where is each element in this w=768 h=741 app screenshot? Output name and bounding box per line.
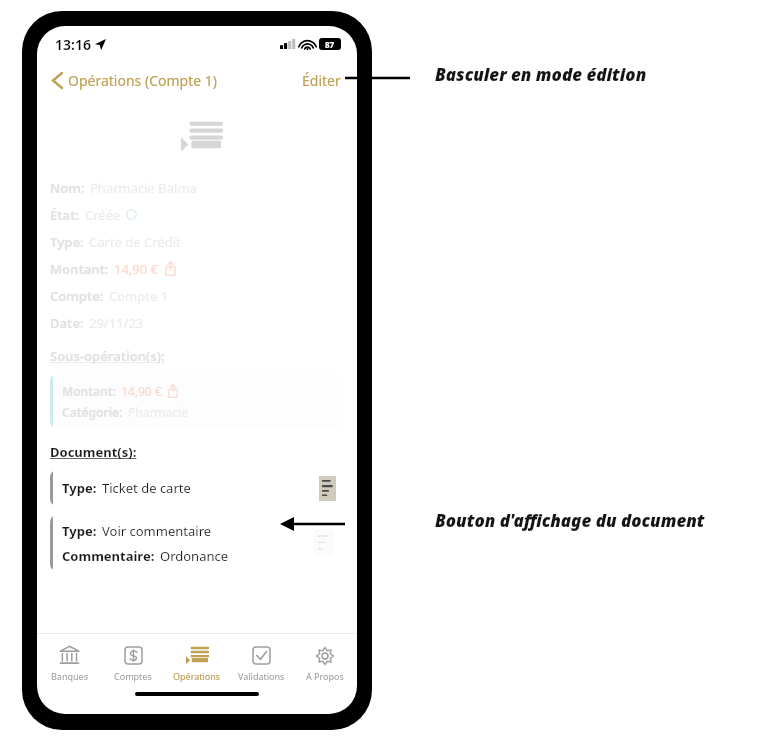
staticText: 87 (325, 39, 335, 50)
staticText: Compte 1 (109, 287, 169, 305)
staticText: Document(s): (50, 443, 137, 461)
button[interactable]: A Propos (293, 634, 357, 692)
staticText: 14,90 € (121, 383, 162, 399)
button[interactable]: Validations (229, 634, 293, 692)
button[interactable]: Afficher le document (314, 530, 334, 556)
button[interactable]: Banques (37, 634, 101, 692)
staticText: 13:16 (55, 35, 91, 54)
staticText: 14,90 € (114, 260, 159, 278)
staticText: Créée (85, 206, 121, 224)
staticText: Pharmacie (128, 404, 188, 420)
staticText: Nom: (50, 179, 85, 197)
staticText: Basculer en mode édition (435, 63, 647, 86)
staticText: Opérations (Compte 1) (68, 71, 217, 90)
staticText: Banques (51, 670, 88, 682)
button[interactable]: Type: (50, 515, 344, 571)
staticText: Voir commentaire (102, 522, 212, 540)
staticText: Validations (238, 670, 285, 682)
staticText: Pharmacie Balma (90, 179, 197, 197)
staticText: Ordonance (160, 547, 229, 565)
staticText: Date: (50, 314, 84, 332)
staticText: 29/11/23 (89, 314, 144, 332)
staticText: Bouton d'affichage du document (435, 509, 705, 532)
button[interactable]: Montant: (50, 374, 344, 428)
button[interactable]: Éditer (298, 67, 345, 94)
staticText: Compte: (50, 287, 104, 305)
staticText: A Propos (306, 670, 344, 682)
staticText: Montant: (50, 260, 109, 278)
staticText: Ticket de carte (102, 479, 191, 497)
staticText: Commentaire: (62, 547, 155, 565)
staticText: État: (50, 206, 80, 224)
staticText: Éditer (302, 71, 341, 90)
button[interactable]: Afficher le document (319, 476, 336, 501)
staticText: Type: (50, 233, 84, 251)
button[interactable]: Opérations (Compte 1) (49, 67, 221, 94)
staticText: Type: (62, 522, 97, 540)
staticText: Carte de Crédit (89, 233, 181, 251)
staticText: Opérations (173, 670, 221, 682)
staticText: Comptes (114, 670, 152, 682)
button[interactable]: Type: (50, 470, 344, 506)
staticText: Montant: (62, 383, 116, 399)
staticText: Type: (62, 479, 97, 497)
button[interactable]: Comptes (101, 634, 165, 692)
staticText: Catégorie: (62, 404, 123, 420)
button[interactable]: Opérations (165, 634, 229, 692)
staticText: Sous-opération(s): (50, 347, 165, 365)
